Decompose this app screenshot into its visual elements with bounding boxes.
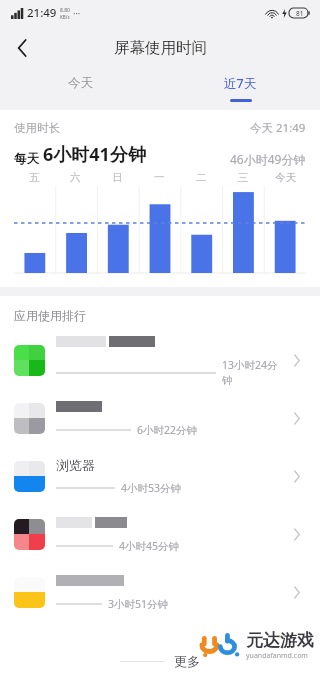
staticText: 8.80 [60,7,70,14]
staticText: 一 [154,171,165,184]
staticText: 13小时24分钟 [222,358,284,387]
staticText: 3小时51分钟 [108,597,169,611]
staticText: 二 [196,171,207,184]
button[interactable]: 13小时24分钟 [0,331,320,389]
staticText: 今天 21:49 [250,120,306,136]
staticText: 使用时长 [14,121,60,135]
staticText: 近7天 [224,75,257,92]
staticText: 浏览器 [56,457,95,472]
staticText: yuandafanmd.com [246,651,308,661]
other: Details [284,579,310,605]
staticText: ··· [73,7,81,19]
staticText: 4小时45分钟 [119,539,180,553]
staticText: 应用使用排行 [14,308,86,323]
staticText: 更多 [174,653,200,669]
staticText: 六 [70,171,81,184]
button[interactable]: 浏览器 [0,447,320,505]
staticText: 屏幕使用时间 [114,38,207,58]
other: Details [284,405,310,431]
staticText: 6小时41分钟 [43,142,146,167]
staticText: 4小时53分钟 [121,481,182,495]
staticText: 三 [238,171,249,184]
button[interactable]: 近7天 [160,70,320,106]
staticText: 每天 [14,151,39,167]
button[interactable]: Back [0,26,44,70]
staticText: 今天 [68,75,93,91]
other: Details [284,347,310,373]
staticText: KB/s [60,14,70,20]
staticText: 五 [29,171,40,184]
staticText: 46小时49分钟 [230,151,306,167]
button[interactable]: 3小时51分钟 [0,563,320,621]
button[interactable]: 4小时45分钟 [0,505,320,563]
staticText: 6小时22分钟 [137,423,198,437]
button[interactable]: 今天 [0,70,160,106]
button[interactable]: 6小时22分钟 [0,389,320,447]
button[interactable]: 更多 [0,649,320,673]
staticText: 元达游戏 [246,630,314,651]
other: Details [284,521,310,547]
staticText: 21:49 [27,5,57,21]
staticText: 日 [112,171,123,184]
staticText: 今天 [275,171,296,184]
other: Details [284,463,310,489]
staticText: 81 [296,9,304,18]
